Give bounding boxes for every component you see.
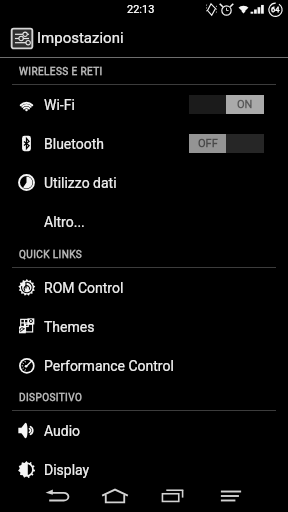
staticText: Utilizzo dati bbox=[44, 175, 117, 191]
button[interactable]: Utilizzo dati bbox=[0, 163, 288, 202]
button[interactable]: Menu bbox=[205, 479, 257, 512]
staticText: Themes bbox=[44, 319, 95, 335]
staticText: Audio bbox=[44, 423, 81, 439]
button[interactable]: Back bbox=[31, 479, 83, 512]
staticText: Bluetooth bbox=[44, 136, 104, 152]
staticText: WIRELESS E RETI bbox=[19, 66, 103, 78]
button[interactable]: ON bbox=[189, 95, 264, 114]
button[interactable]: Impostazioni bbox=[0, 19, 288, 57]
staticText: Display bbox=[44, 462, 90, 478]
button[interactable]: OFF bbox=[189, 134, 264, 153]
button[interactable]: Bluetooth bbox=[0, 124, 288, 163]
staticText: 22:13 bbox=[127, 3, 155, 16]
staticText: DISPOSITIVO bbox=[19, 392, 83, 404]
button[interactable]: Display bbox=[0, 450, 288, 489]
staticText: Performance Control bbox=[44, 358, 174, 374]
button[interactable]: Home bbox=[89, 479, 141, 512]
staticText: Wi-Fi bbox=[44, 97, 75, 113]
staticText: 64 bbox=[271, 5, 280, 14]
button[interactable]: Performance Control bbox=[0, 346, 288, 385]
button[interactable]: ROM Control bbox=[0, 268, 288, 307]
staticText: Impostazioni bbox=[37, 29, 124, 47]
button[interactable]: Altro... bbox=[0, 202, 288, 241]
button[interactable]: Recents bbox=[147, 479, 199, 512]
staticText: Altro... bbox=[44, 214, 85, 230]
staticText: QUICK LINKS bbox=[19, 249, 83, 261]
staticText: OFF bbox=[198, 137, 218, 150]
button[interactable]: Wi-Fi bbox=[0, 85, 288, 124]
staticText: ROM Control bbox=[44, 280, 124, 296]
button[interactable]: Themes bbox=[0, 307, 288, 346]
staticText: ON bbox=[237, 98, 253, 111]
button[interactable]: Audio bbox=[0, 411, 288, 450]
